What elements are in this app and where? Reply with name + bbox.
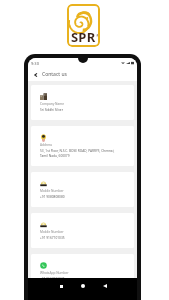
- button[interactable]: Back: [31, 70, 40, 79]
- button[interactable]: Mobile Number: [31, 213, 134, 248]
- staticText: 9:30: [31, 61, 39, 66]
- staticText: SPR: [71, 28, 96, 46]
- button[interactable]: Address: [31, 126, 134, 166]
- button[interactable]: Company Name: [31, 85, 134, 120]
- staticText: +91 9080808080: [40, 195, 65, 199]
- staticText: Mobile Number: [40, 189, 64, 193]
- button[interactable]: Recent apps: [55, 280, 67, 292]
- staticText: Mobile Number: [40, 230, 64, 234]
- button[interactable]: Back: [99, 280, 111, 292]
- staticText: +91 9167101035: [40, 277, 65, 281]
- staticText: Company Name: [40, 102, 65, 106]
- button[interactable]: WhatsApp Number: [31, 254, 134, 289]
- staticText: Tamil Nadu, 600079: [40, 154, 70, 158]
- staticText: ®: [96, 33, 100, 38]
- staticText: +91 9167101035: [40, 236, 65, 240]
- staticText: 53, 1st Floor, N.S.C. BOSE ROAD, PARRYS,…: [40, 149, 115, 153]
- button[interactable]: Mobile Number: [31, 172, 134, 207]
- staticText: Contact us: [42, 71, 67, 78]
- button[interactable]: Home: [77, 280, 89, 292]
- staticText: WhatsApp Number: [40, 271, 69, 275]
- staticText: Sri Siddhi Silver: [40, 108, 63, 112]
- staticText: Address: [40, 143, 53, 147]
